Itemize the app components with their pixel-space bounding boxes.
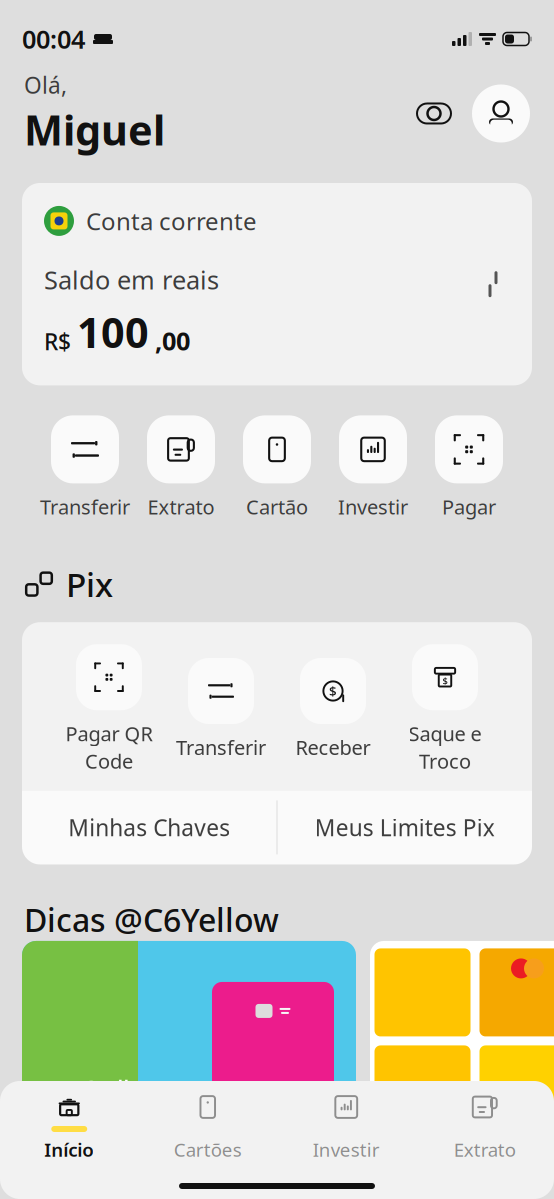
staticText: Extrato <box>454 1137 516 1162</box>
staticText: Meus Limites Pix <box>315 812 495 842</box>
staticText: Pagar QR <box>65 720 152 747</box>
staticText: c6yellow <box>73 1074 135 1127</box>
button[interactable]: Extrato <box>415 1093 554 1162</box>
button[interactable]: Conta corrente <box>22 183 532 385</box>
staticText: Início <box>44 1137 94 1162</box>
staticText: Olá, <box>24 70 67 100</box>
staticText: Saldo em reais <box>44 263 219 296</box>
button[interactable]: Investir <box>277 1093 415 1162</box>
staticText: Dicas @C6Yellow <box>24 898 279 941</box>
staticText: Conta corrente <box>86 205 257 237</box>
staticText: Pix <box>66 562 113 606</box>
staticText: $ <box>329 682 337 700</box>
staticText: Extrato <box>147 493 214 520</box>
staticText: Receber <box>295 734 370 761</box>
button[interactable]: Pagar <box>421 415 517 520</box>
staticText: Transferir <box>40 493 130 520</box>
button[interactable]: Ocultar saldo <box>412 91 456 135</box>
button[interactable]: Cartões <box>138 1093 277 1162</box>
staticText: Pagar <box>442 493 496 520</box>
staticText: Code <box>85 748 133 774</box>
button[interactable]: $ <box>389 644 501 774</box>
button[interactable]: Cartão <box>229 415 325 520</box>
staticText: R$ <box>44 326 71 356</box>
button[interactable]: Início <box>0 1093 138 1162</box>
button[interactable]: Pagar QR <box>53 644 165 774</box>
staticText: Miguel <box>24 102 165 157</box>
staticText: 100 <box>77 304 149 359</box>
staticText: Cartões <box>174 1137 242 1162</box>
staticText: Investir <box>338 493 408 520</box>
button[interactable]: $ <box>277 658 389 761</box>
staticText: Transferir <box>176 734 266 761</box>
button[interactable]: Extrato <box>133 415 229 520</box>
button[interactable]: Perfil <box>472 84 530 142</box>
staticText: Saque e <box>408 720 481 747</box>
staticText: Investir <box>313 1137 380 1162</box>
button[interactable]: Investir <box>325 415 421 520</box>
staticText: Minhas Chaves <box>68 812 230 842</box>
button[interactable]: Transferir <box>37 415 133 520</box>
staticText: ,00 <box>155 324 190 357</box>
staticText: Cartão <box>246 493 308 520</box>
button[interactable]: Transferir <box>165 658 277 761</box>
button[interactable]: Meus Limites Pix <box>277 790 532 864</box>
staticText: $ <box>442 674 447 687</box>
staticText: 00:04 <box>22 22 85 56</box>
staticText: Troco <box>419 748 471 774</box>
button[interactable]: Minhas Chaves <box>22 790 276 864</box>
